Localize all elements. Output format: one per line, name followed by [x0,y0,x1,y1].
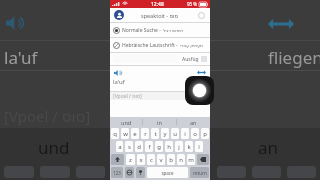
button[interactable]: Account avatar [114,10,124,20]
button[interactable]: a [116,141,123,152]
staticText: i [184,130,186,138]
staticText: la'uf [113,78,125,86]
button[interactable]: g [155,141,163,152]
staticText: space [161,170,174,176]
button[interactable]: l [195,141,203,152]
button[interactable]: Hebräische Lautschrift - [110,38,210,52]
button[interactable]: Swap languages [196,68,207,76]
button[interactable]: space [147,167,188,178]
staticText: g [157,143,161,151]
button[interactable]: return [190,167,209,178]
staticText: a [118,143,122,151]
staticText: v [159,156,163,164]
button[interactable]: o [191,128,199,139]
staticText: n [179,156,183,164]
button[interactable]: t [151,128,159,139]
button[interactable]: n [177,154,185,165]
staticText: חיפוש רגיל [163,27,184,33]
staticText: an [190,119,197,126]
button[interactable]: j [175,141,183,152]
staticText: b [169,156,173,164]
button[interactable]: m [187,154,195,165]
button[interactable]: x [137,154,145,165]
staticText: Normale Suche - [122,27,161,34]
button[interactable]: z [126,154,135,165]
staticText: x [139,156,143,164]
button[interactable]: p [201,128,209,139]
button[interactable]: Backspace [197,154,209,165]
button[interactable]: u [171,128,179,139]
staticText: [Vpoel / סוס] [113,93,142,100]
staticText: f [148,143,151,151]
staticText: 123 [113,170,121,176]
button[interactable]: Refresh [197,11,206,20]
other: Recording indicator [185,76,214,105]
button[interactable]: s [125,141,133,152]
button[interactable]: Ausfüg [182,56,199,63]
button[interactable]: b [167,154,175,165]
button[interactable]: 123 [111,167,123,178]
button[interactable]: e [131,128,139,139]
staticText: e [133,130,137,138]
button[interactable]: f [145,141,153,152]
staticText: an [258,136,279,159]
button[interactable]: Shift [111,154,124,165]
button[interactable]: Emoji keyboard [125,167,134,178]
staticText: l [198,143,200,151]
button[interactable]: d [135,141,143,152]
button[interactable]: r [141,128,149,139]
staticText: t [154,130,157,138]
staticText: o [193,130,197,138]
staticText: la'uf [4,46,38,69]
staticText: und [38,136,70,159]
staticText: תעתיק עברי של המילה [180,42,207,48]
staticText: speaktoit - סוס [141,12,179,19]
staticText: k [187,143,191,151]
staticText: u [173,130,177,138]
staticText: p [203,130,207,138]
staticText: s [128,143,131,151]
staticText: y [163,130,167,138]
button[interactable]: an [177,117,210,127]
button[interactable]: v [157,154,165,165]
staticText: return [193,170,207,176]
button[interactable]: q [111,128,119,139]
staticText: h [167,143,171,151]
staticText: und [121,119,132,126]
button[interactable]: w [121,128,129,139]
staticText: m [188,156,194,164]
button[interactable]: y [161,128,169,139]
button[interactable]: h [165,141,173,152]
staticText: q [113,130,117,138]
staticText: j [178,143,180,151]
staticText: fliegen [268,46,320,69]
staticText: 95 % [187,1,198,7]
staticText: w [123,130,128,138]
button[interactable]: Play pronunciation [113,68,123,77]
staticText: z [129,156,132,164]
staticText: 12:48 [151,1,164,8]
staticText: r [144,130,147,138]
button[interactable]: i [181,128,189,139]
button[interactable]: und [110,117,142,127]
staticText: in [157,119,162,126]
button[interactable]: in [143,117,176,127]
staticText: d [137,143,141,151]
button[interactable]: Normale Suche - [110,23,210,37]
button[interactable]: k [185,141,193,152]
button[interactable]: c [147,154,155,165]
button[interactable]: Dictation [136,167,145,178]
staticText: c [150,156,153,164]
staticText: [Vpoel / סוס] [4,106,91,126]
staticText: Hebräische Lautschrift - [122,42,178,49]
